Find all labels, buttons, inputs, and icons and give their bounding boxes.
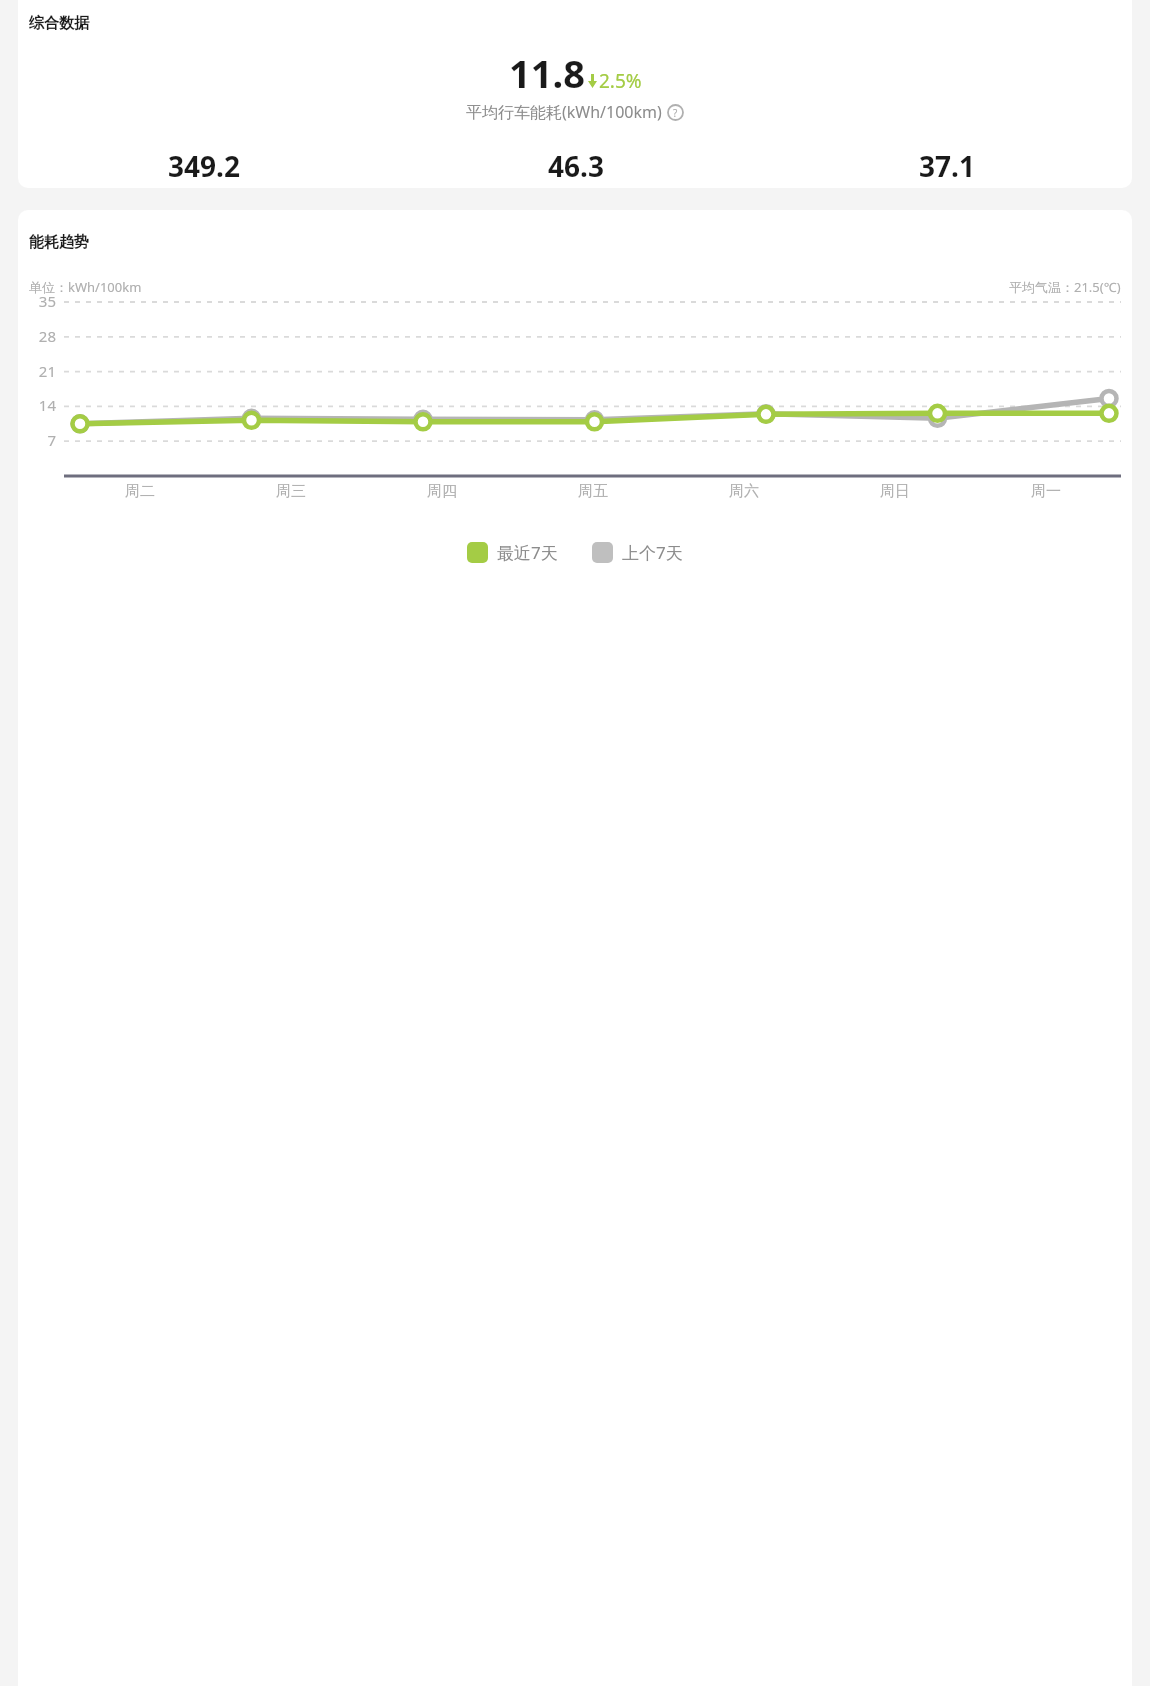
staticText: 最近7天	[497, 541, 558, 564]
staticText: 37.1	[919, 147, 975, 185]
staticText: 综合数据	[29, 14, 89, 33]
button[interactable]: 349.2	[18, 147, 390, 188]
staticText: 7	[18, 430, 56, 450]
button[interactable]: 上个7天	[592, 541, 683, 564]
staticText: 周二	[125, 482, 155, 501]
staticText: 单位：kWh/100km	[29, 278, 142, 296]
staticText: 349.2	[168, 147, 240, 185]
staticText: 周三	[276, 482, 306, 501]
staticText: 周四	[427, 482, 457, 501]
staticText: 14	[18, 395, 56, 415]
staticText: 周五	[578, 482, 608, 501]
staticText: 28	[18, 326, 56, 346]
staticText: 46.3	[548, 147, 604, 185]
staticText: 周六	[729, 482, 759, 501]
button[interactable]: Help	[667, 104, 684, 121]
staticText: ?	[673, 106, 678, 120]
staticText: 周一	[1031, 482, 1061, 501]
button[interactable]: 46.3	[390, 147, 761, 188]
staticText: 周日	[880, 482, 910, 501]
staticText: 上个7天	[622, 541, 683, 564]
staticText: 平均行车能耗(kWh/100km)	[466, 101, 662, 123]
staticText: 平均气温：21.5(℃)	[1009, 278, 1121, 296]
button[interactable]: 最近7天	[467, 541, 558, 564]
staticText: 能耗趋势	[29, 233, 89, 252]
staticText: 2.5%	[599, 68, 642, 94]
staticText: 11.8	[509, 47, 585, 99]
staticText: 21	[18, 361, 56, 381]
staticText: 35	[18, 291, 56, 311]
button[interactable]: 37.1	[761, 147, 1132, 188]
